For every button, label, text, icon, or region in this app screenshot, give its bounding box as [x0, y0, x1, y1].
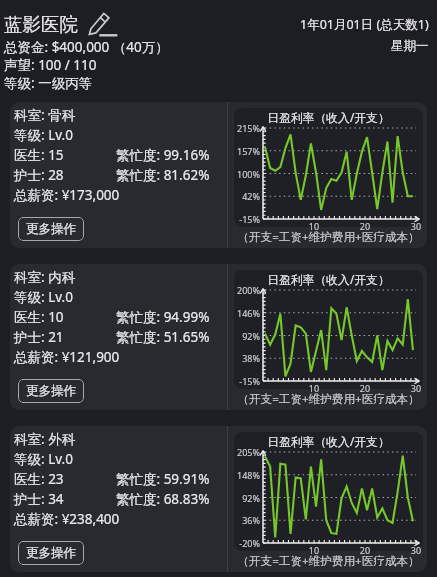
button[interactable]: 更多操作 — [18, 217, 84, 241]
staticText: 科室: 内科 — [14, 268, 76, 286]
staticText: 30 — [408, 544, 424, 556]
staticText: 科室: 外科 — [14, 430, 76, 448]
staticText: 总薪资: ¥173,000 — [14, 186, 120, 204]
staticText: 20 — [357, 544, 373, 556]
staticText: 200% — [234, 284, 260, 296]
staticText: -20% — [234, 537, 260, 549]
staticText: 30 — [408, 382, 424, 394]
staticText: （开支=工资+维护费用+医疗成本） — [234, 229, 423, 245]
button[interactable]: 重命名医院 — [88, 12, 112, 36]
staticText: 等级: Lv.0 — [14, 288, 73, 306]
button[interactable]: 更多操作 — [18, 541, 84, 565]
staticText: 148% — [234, 469, 260, 481]
staticText: 星期一 — [391, 38, 429, 54]
staticText: 等级: Lv.0 — [14, 450, 73, 468]
staticText: 蓝影医院 — [4, 13, 78, 36]
staticText: 繁忙度: 99.16% — [116, 146, 210, 164]
staticText: 日盈利率（收入/开支） — [234, 109, 423, 125]
staticText: 92% — [234, 492, 260, 504]
staticText: 日盈利率（收入/开支） — [234, 271, 423, 287]
staticText: 护士: 34 — [14, 490, 116, 508]
button[interactable]: 科室: 外科 — [10, 426, 427, 572]
staticText: 157% — [234, 145, 260, 157]
staticText: 护士: 21 — [14, 328, 116, 346]
staticText: 繁忙度: 68.83% — [116, 490, 210, 508]
staticText: 42% — [234, 190, 260, 202]
staticText: 10 — [306, 382, 322, 394]
staticText: 100% — [234, 168, 260, 180]
staticText: 10 — [306, 544, 322, 556]
staticText: 繁忙度: 81.62% — [116, 166, 210, 184]
staticText: 38% — [234, 352, 260, 364]
staticText: 20 — [357, 382, 373, 394]
staticText: （开支=工资+维护费用+医疗成本） — [234, 391, 423, 407]
staticText: 更多操作 — [26, 545, 76, 561]
staticText: 等级: 一级丙等 — [4, 74, 93, 92]
staticText: 30 — [408, 220, 424, 232]
staticText: 等级: Lv.0 — [14, 126, 73, 144]
button[interactable]: 科室: 内科 — [10, 264, 427, 410]
staticText: 36% — [234, 514, 260, 526]
staticText: 92% — [234, 330, 260, 342]
staticText: 日盈利率（收入/开支） — [234, 433, 423, 449]
staticText: 医生: 15 — [14, 146, 116, 164]
staticText: 繁忙度: 94.99% — [116, 308, 210, 326]
button[interactable]: 科室: 骨科 — [10, 102, 427, 248]
staticText: 总薪资: ¥238,400 — [14, 510, 120, 528]
staticText: 医生: 10 — [14, 308, 116, 326]
staticText: 总资金: $400,000 （40万） — [4, 38, 169, 56]
staticText: 繁忙度: 51.65% — [116, 328, 210, 346]
staticText: （开支=工资+维护费用+医疗成本） — [234, 553, 423, 569]
staticText: 10 — [306, 220, 322, 232]
staticText: 215% — [234, 122, 260, 134]
staticText: 更多操作 — [26, 221, 76, 237]
staticText: -15% — [234, 375, 260, 387]
staticText: 更多操作 — [26, 383, 76, 399]
staticText: 1年01月01日 (总天数1) — [300, 16, 429, 33]
staticText: 声望: 100 / 110 — [4, 56, 97, 74]
staticText: 20 — [357, 220, 373, 232]
staticText: 205% — [234, 446, 260, 458]
staticText: 科室: 骨科 — [14, 106, 76, 124]
staticText: 医生: 23 — [14, 470, 116, 488]
staticText: 繁忙度: 59.91% — [116, 470, 210, 488]
staticText: -15% — [234, 213, 260, 225]
staticText: 146% — [234, 307, 260, 319]
button[interactable]: 更多操作 — [18, 379, 84, 403]
staticText: 护士: 28 — [14, 166, 116, 184]
staticText: 总薪资: ¥121,900 — [14, 348, 120, 366]
